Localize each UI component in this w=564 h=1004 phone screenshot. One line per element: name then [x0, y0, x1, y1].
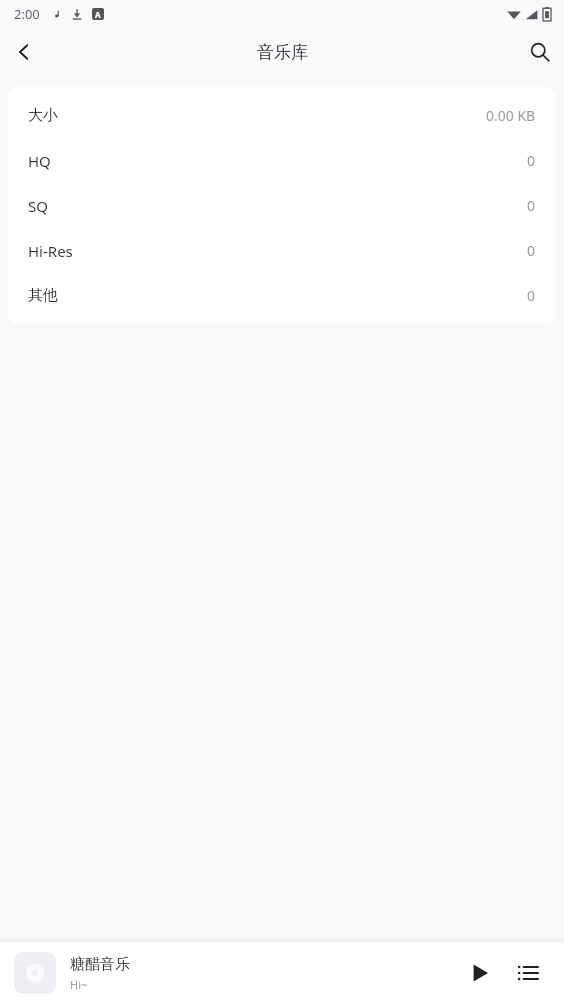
- button[interactable]: Play: [458, 951, 502, 995]
- staticText: 糖醋音乐: [70, 955, 130, 974]
- staticText: 0: [527, 151, 536, 170]
- staticText: 大小: [28, 106, 58, 125]
- staticText: 0.00 KB: [486, 106, 536, 125]
- staticText: 0: [527, 196, 536, 215]
- staticText: 0: [527, 241, 536, 260]
- button[interactable]: Now playing artwork: [14, 952, 56, 994]
- staticText: Hi~: [70, 977, 88, 992]
- staticText: Hi-Res: [28, 241, 73, 261]
- staticText: SQ: [28, 196, 48, 216]
- button[interactable]: 大小: [8, 93, 556, 138]
- staticText: 0: [527, 286, 536, 305]
- button[interactable]: 糖醋音乐: [70, 955, 458, 992]
- button[interactable]: Playlist: [506, 951, 550, 995]
- staticText: HQ: [28, 151, 51, 171]
- button[interactable]: Back: [0, 28, 48, 76]
- button[interactable]: HQ: [8, 138, 556, 183]
- staticText: A: [95, 9, 101, 20]
- button[interactable]: 其他: [8, 273, 556, 318]
- staticText: 音乐库: [257, 42, 308, 63]
- staticText: 其他: [28, 286, 58, 305]
- button[interactable]: Search: [516, 28, 564, 76]
- staticText: 2:00: [14, 5, 40, 23]
- button[interactable]: SQ: [8, 183, 556, 228]
- button[interactable]: Hi-Res: [8, 228, 556, 273]
